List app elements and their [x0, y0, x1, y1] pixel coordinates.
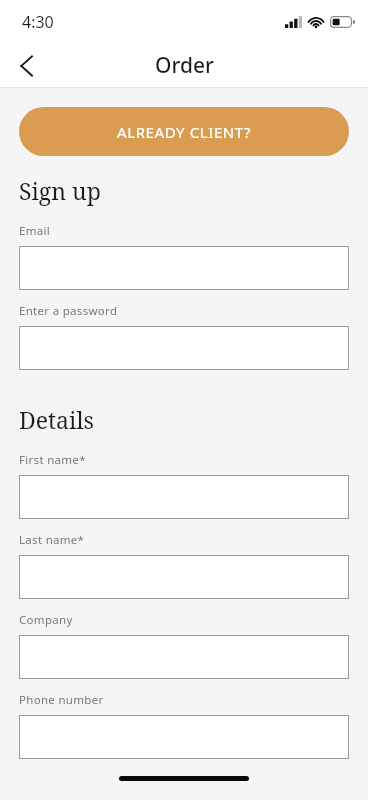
staticText: First name*: [19, 452, 86, 468]
staticText: Order: [155, 51, 214, 80]
button[interactable]: First name*: [19, 475, 349, 519]
staticText: Enter a password: [19, 303, 118, 319]
staticText: Details: [19, 404, 94, 435]
button[interactable]: Back: [6, 46, 46, 86]
staticText: Email: [19, 223, 51, 239]
staticText: ALREADY CLIENT?: [117, 122, 252, 142]
button[interactable]: Email: [19, 246, 349, 290]
button[interactable]: Phone number: [19, 715, 349, 759]
button[interactable]: ALREADY CLIENT?: [19, 107, 349, 156]
staticText: Sign up: [19, 175, 101, 206]
staticText: 4:30: [22, 11, 54, 33]
staticText: Last name*: [19, 532, 85, 548]
staticText: Company: [19, 612, 73, 628]
button[interactable]: Last name*: [19, 555, 349, 599]
staticText: Phone number: [19, 692, 104, 708]
button[interactable]: Enter a password: [19, 326, 349, 370]
button[interactable]: Company: [19, 635, 349, 679]
